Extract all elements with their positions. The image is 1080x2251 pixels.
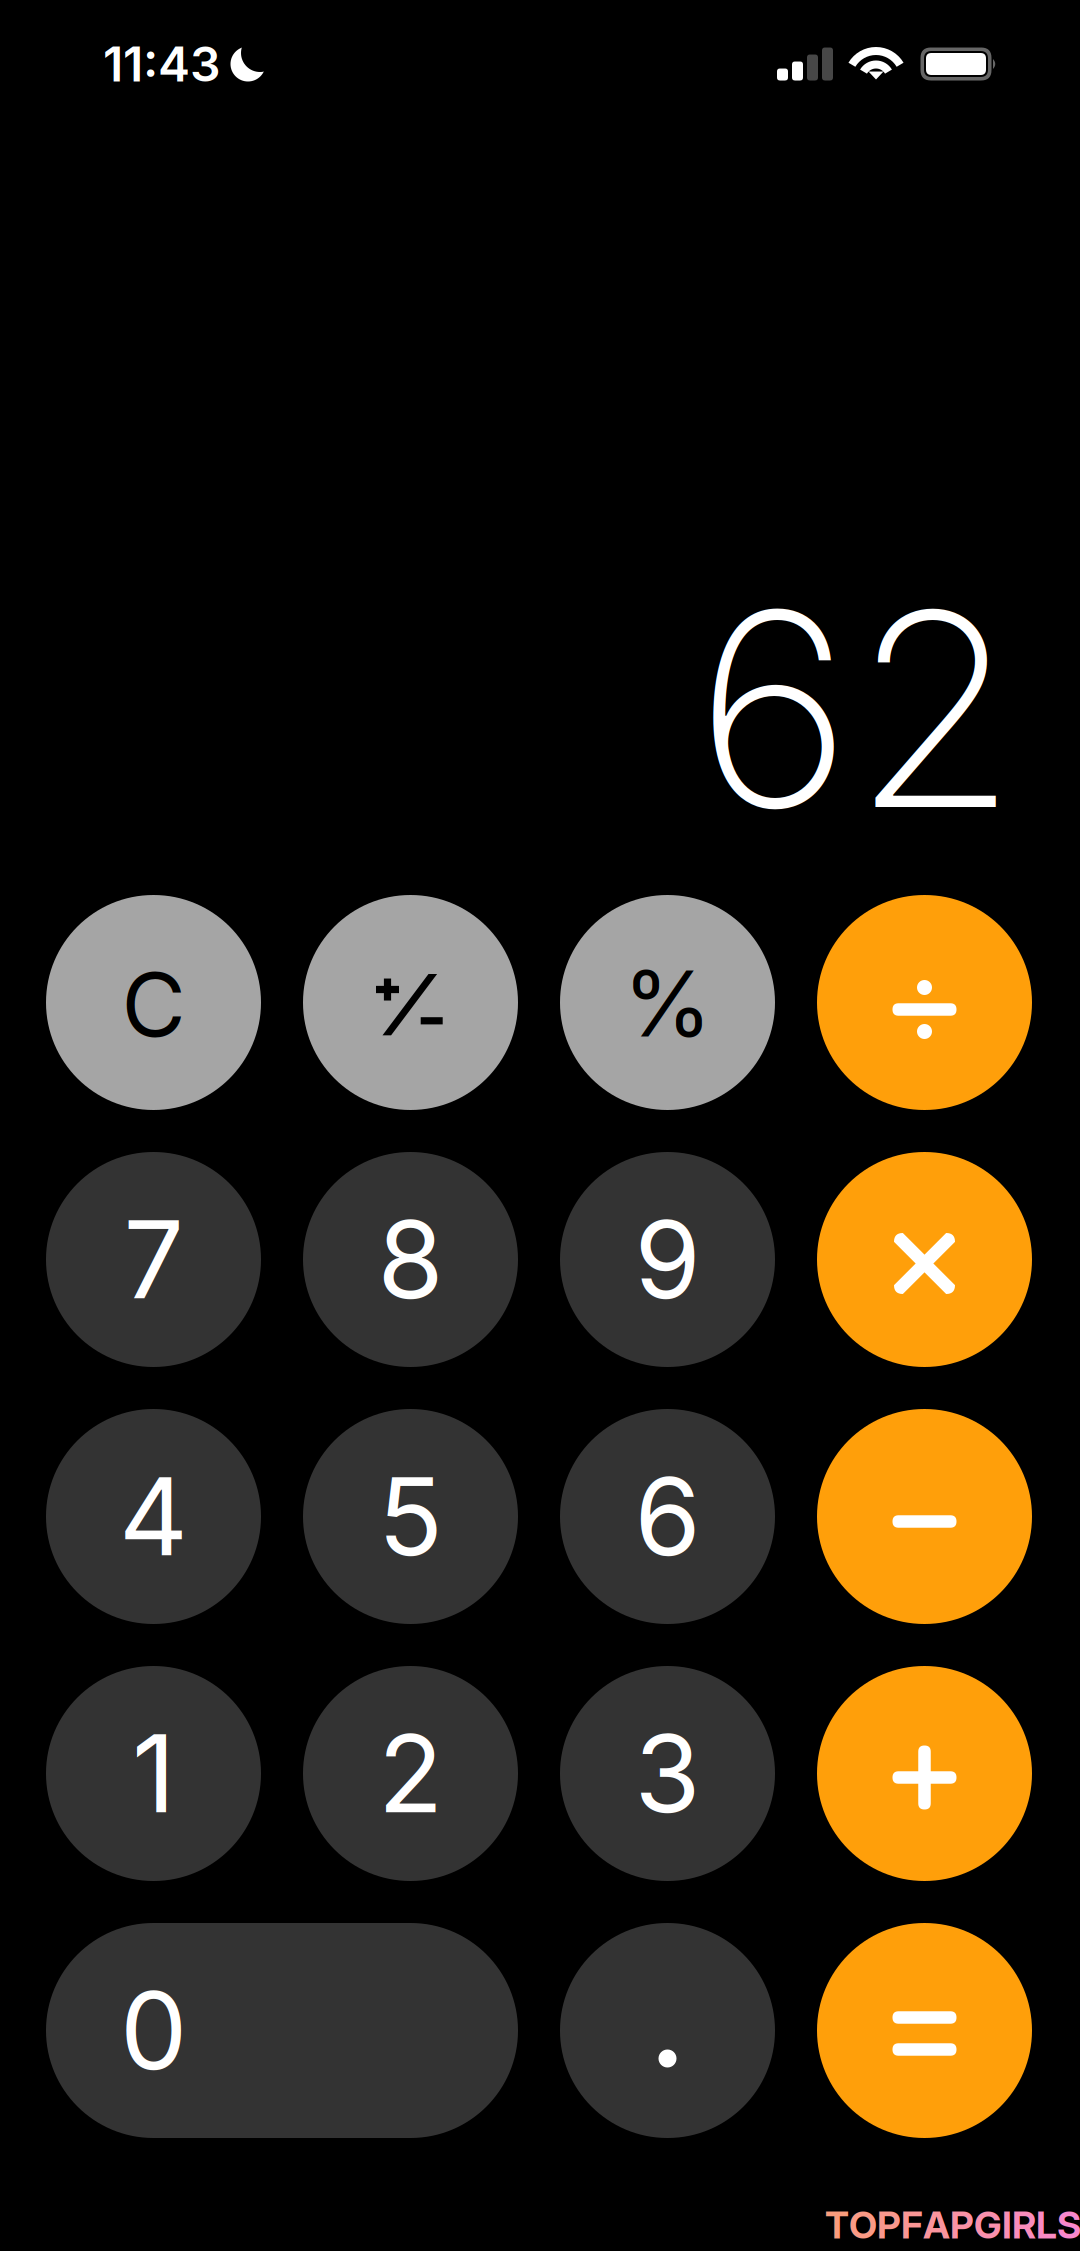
- staticText: 62: [695, 546, 1018, 872]
- button[interactable]: 1: [46, 1666, 261, 1881]
- staticText: P: [950, 2202, 974, 2248]
- staticText: T: [825, 2202, 849, 2248]
- button[interactable]: 5: [303, 1409, 518, 1624]
- staticText: O: [849, 2202, 877, 2248]
- staticText: %: [623, 949, 712, 1058]
- button[interactable]: clear: [46, 895, 261, 1110]
- button[interactable]: 9: [560, 1152, 775, 1367]
- staticText: C: [121, 951, 185, 1058]
- button[interactable]: plus: [817, 1666, 1032, 1881]
- staticText: 5: [378, 1452, 443, 1581]
- button[interactable]: equals: [817, 1923, 1032, 2138]
- staticText: L: [1036, 2202, 1057, 2248]
- button[interactable]: 8: [303, 1152, 518, 1367]
- button[interactable]: 3: [560, 1666, 775, 1881]
- staticText: 2: [378, 1709, 443, 1838]
- staticText: R: [1012, 2202, 1036, 2248]
- staticText: 4: [119, 1452, 188, 1581]
- staticText: 11:43: [103, 35, 221, 93]
- button[interactable]: minus: [817, 1409, 1032, 1624]
- button[interactable]: 2: [303, 1666, 518, 1881]
- staticText: 1: [132, 1709, 175, 1838]
- button[interactable]: 4: [46, 1409, 261, 1624]
- staticText: 3: [634, 1709, 700, 1838]
- staticText: G: [974, 2202, 1002, 2248]
- staticText: S: [1057, 2202, 1080, 2248]
- staticText: 8: [377, 1195, 443, 1324]
- staticText: 7: [123, 1195, 183, 1324]
- button[interactable]: 0: [46, 1923, 518, 2138]
- button[interactable]: plus minus: [303, 895, 518, 1110]
- button[interactable]: multiply: [817, 1152, 1032, 1367]
- staticText: F: [901, 2202, 923, 2248]
- button[interactable]: decimal point: [560, 1923, 775, 2138]
- staticText: P: [877, 2202, 901, 2248]
- button[interactable]: 6: [560, 1409, 775, 1624]
- staticText: I: [1002, 2202, 1012, 2248]
- button[interactable]: percent: [560, 895, 775, 1110]
- staticText: 0: [120, 1966, 187, 2095]
- button[interactable]: 7: [46, 1152, 261, 1367]
- button[interactable]: divide: [817, 895, 1032, 1110]
- staticText: 9: [634, 1195, 700, 1324]
- staticText: A: [923, 2202, 950, 2248]
- staticText: 6: [634, 1452, 700, 1581]
